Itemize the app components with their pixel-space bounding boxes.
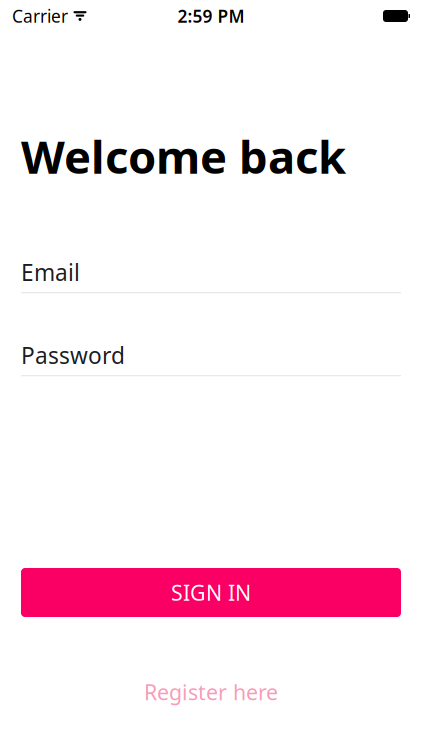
staticText: 2:59 PM — [177, 4, 244, 27]
staticText: Password — [21, 340, 125, 370]
staticText: Carrier — [12, 4, 68, 27]
staticText: Welcome back — [21, 126, 346, 186]
staticText: Register here — [144, 678, 278, 706]
button[interactable]: Register here — [0, 670, 422, 714]
staticText: SIGN IN — [171, 578, 251, 607]
button[interactable]: SIGN IN — [21, 568, 401, 617]
staticText: Email — [21, 257, 80, 287]
